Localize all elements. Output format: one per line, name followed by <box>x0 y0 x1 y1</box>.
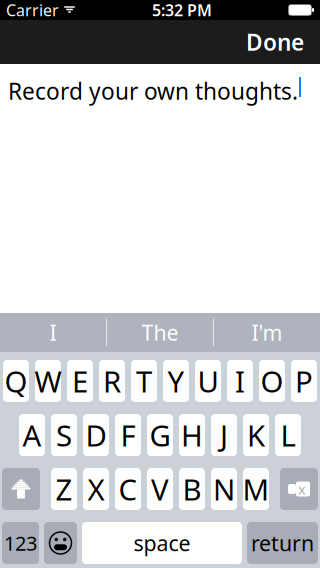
button[interactable]: U <box>195 360 221 402</box>
staticText: return <box>251 529 314 557</box>
button[interactable]: Shift <box>2 468 40 510</box>
staticText: 123 <box>4 530 37 556</box>
staticText: I'm <box>251 318 282 347</box>
button[interactable]: O <box>259 360 285 402</box>
staticText: F <box>120 415 135 454</box>
button[interactable]: C <box>115 468 141 510</box>
staticText: U <box>197 361 218 400</box>
staticText: H <box>181 415 203 454</box>
button[interactable]: Emoji <box>44 522 77 564</box>
button[interactable]: Q <box>3 360 29 402</box>
button[interactable]: J <box>211 414 237 456</box>
staticText: Z <box>55 469 72 508</box>
button[interactable]: V <box>147 468 173 510</box>
button[interactable]: The <box>107 313 213 352</box>
button[interactable]: I <box>0 313 106 352</box>
button[interactable]: P <box>291 360 317 402</box>
staticText: space <box>133 529 190 557</box>
button[interactable]: I'm <box>214 313 320 352</box>
staticText: Y <box>167 361 184 400</box>
button[interactable]: R <box>99 360 125 402</box>
staticText: Record your own thoughts. <box>8 76 298 106</box>
button[interactable]: B <box>179 468 205 510</box>
staticText: J <box>220 415 228 454</box>
button[interactable]: E <box>67 360 93 402</box>
button[interactable]: H <box>179 414 205 456</box>
staticText: Carrier <box>6 0 59 21</box>
button[interactable]: N <box>211 468 237 510</box>
button[interactable]: 123 <box>2 522 39 564</box>
staticText: X <box>87 469 104 508</box>
staticText: D <box>85 415 106 454</box>
button[interactable]: M <box>243 468 269 510</box>
staticText: M <box>242 469 269 508</box>
button[interactable]: A <box>19 414 45 456</box>
button[interactable]: G <box>147 414 173 456</box>
staticText: The <box>141 318 178 347</box>
button[interactable]: T <box>131 360 157 402</box>
staticText: G <box>149 415 170 454</box>
button[interactable]: return <box>247 522 318 564</box>
button[interactable]: I <box>227 360 253 402</box>
staticText: E <box>72 361 88 400</box>
button[interactable]: Delete <box>280 468 318 510</box>
staticText: Q <box>4 361 27 400</box>
button[interactable]: X <box>83 468 109 510</box>
staticText: N <box>213 469 235 508</box>
staticText: I <box>235 361 245 400</box>
button[interactable]: space <box>82 522 242 564</box>
staticText: A <box>22 415 41 454</box>
staticText: O <box>260 361 283 400</box>
staticText: C <box>118 469 137 508</box>
button[interactable]: D <box>83 414 109 456</box>
button[interactable]: W <box>35 360 61 402</box>
staticText: P <box>295 361 313 400</box>
staticText: R <box>103 361 121 400</box>
staticText: S <box>56 415 72 454</box>
staticText: I <box>49 318 56 347</box>
staticText: 5:32 PM <box>152 0 212 21</box>
staticText: x <box>298 479 306 499</box>
staticText: W <box>34 361 61 400</box>
staticText: T <box>136 361 152 400</box>
staticText: V <box>151 469 169 508</box>
staticText: Done <box>246 27 304 57</box>
button[interactable]: S <box>51 414 77 456</box>
button[interactable]: L <box>275 414 301 456</box>
button[interactable]: Y <box>163 360 189 402</box>
staticText: K <box>247 415 265 454</box>
button[interactable]: F <box>115 414 141 456</box>
button[interactable]: K <box>243 414 269 456</box>
staticText: L <box>280 415 295 454</box>
button[interactable]: Z <box>51 468 77 510</box>
staticText: B <box>182 469 201 508</box>
button[interactable]: Done <box>236 19 314 65</box>
